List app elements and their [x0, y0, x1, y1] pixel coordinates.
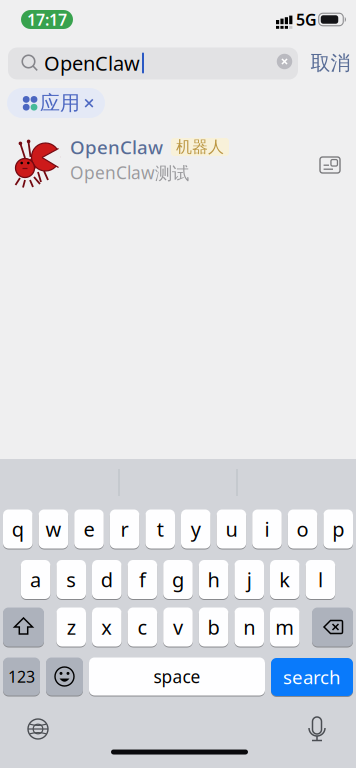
button[interactable]: z — [56, 607, 86, 647]
button[interactable]: o — [288, 509, 317, 549]
button[interactable]: x — [92, 607, 122, 647]
button[interactable]: c — [128, 607, 157, 647]
button[interactable]: p — [323, 509, 353, 549]
button[interactable]: search — [271, 657, 353, 696]
button[interactable]: space — [89, 657, 265, 696]
staticText: p — [332, 516, 344, 542]
button[interactable]: Delete — [312, 607, 353, 647]
staticText: OpenClaw测试 — [70, 161, 189, 184]
button[interactable]: k — [270, 560, 300, 600]
staticText: m — [275, 614, 294, 640]
staticText: e — [83, 516, 94, 542]
staticText: h — [208, 566, 220, 593]
staticText: b — [208, 614, 220, 640]
button[interactable]: 取消 — [310, 51, 350, 75]
button[interactable]: s — [56, 560, 86, 600]
staticText: f — [139, 566, 146, 593]
staticText: r — [121, 516, 129, 542]
button[interactable]: View contact card — [320, 157, 340, 173]
button[interactable]: i — [252, 509, 282, 549]
staticText: y — [191, 516, 201, 542]
staticText: g — [172, 566, 184, 593]
button[interactable]: j — [234, 560, 264, 600]
button[interactable]: h — [199, 560, 228, 600]
staticText: u — [225, 516, 237, 542]
button[interactable]: d — [92, 560, 122, 600]
staticText: t — [157, 516, 164, 542]
button[interactable]: l — [306, 560, 335, 600]
button[interactable]: n — [234, 607, 264, 647]
button[interactable]: f — [128, 560, 157, 600]
button[interactable]: y — [181, 509, 211, 549]
button[interactable]: 123 — [3, 657, 40, 696]
button[interactable]: Return to call — [21, 10, 73, 29]
button[interactable]: u — [217, 509, 246, 549]
staticText: 机器人 — [176, 137, 224, 157]
staticText: 应用 — [40, 91, 80, 115]
button[interactable]: Shift — [3, 607, 44, 647]
button[interactable]: g — [163, 560, 193, 600]
staticText: l — [318, 566, 323, 593]
button[interactable]: 应用 filter — [7, 88, 105, 118]
staticText: z — [67, 614, 76, 640]
button[interactable]: w — [39, 509, 68, 549]
staticText: v — [173, 614, 183, 640]
button[interactable]: Dictate — [304, 716, 330, 742]
staticText: 取消 — [310, 51, 350, 75]
staticText: space — [153, 665, 200, 688]
staticText: 5G — [296, 9, 317, 30]
staticText: a — [30, 566, 41, 593]
button[interactable]: m — [270, 607, 300, 647]
button[interactable]: Clear text — [277, 54, 292, 69]
button[interactable]: e — [74, 509, 104, 549]
button[interactable]: b — [199, 607, 228, 647]
staticText: c — [137, 614, 147, 640]
button[interactable]: a — [21, 560, 50, 600]
staticText: n — [243, 614, 255, 640]
staticText: o — [297, 516, 309, 542]
button[interactable]: q — [3, 509, 33, 549]
staticText: d — [101, 566, 113, 593]
staticText: s — [66, 566, 76, 593]
button[interactable]: Next keyboard — [27, 718, 49, 740]
button[interactable]: OpenClaw 机器人, OpenClaw测试 — [70, 133, 310, 185]
staticText: q — [12, 516, 24, 542]
staticText: j — [247, 566, 252, 593]
button[interactable]: r — [110, 509, 139, 549]
button[interactable]: Emoji — [46, 657, 83, 696]
button[interactable]: t — [145, 509, 175, 549]
staticText: k — [279, 566, 290, 593]
staticText: x — [101, 614, 112, 640]
staticText: i — [264, 516, 269, 542]
staticText: OpenClaw — [44, 50, 140, 76]
staticText: 17:17 — [27, 9, 67, 30]
staticText: 123 — [8, 666, 35, 687]
staticText: OpenClaw — [70, 135, 163, 159]
staticText: w — [45, 516, 61, 542]
button[interactable]: v — [163, 607, 193, 647]
staticText: search — [283, 665, 341, 689]
